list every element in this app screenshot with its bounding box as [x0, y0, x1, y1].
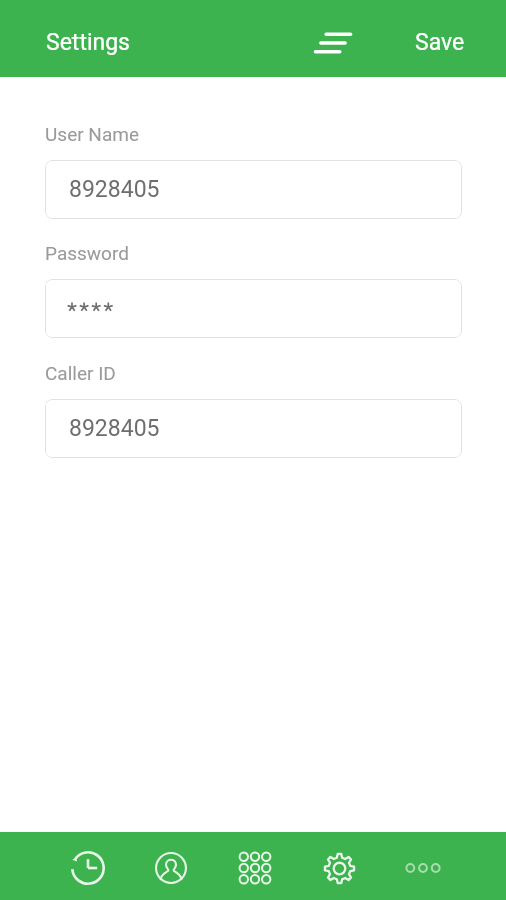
button[interactable]: Recents — [46, 832, 129, 900]
button[interactable]: Sort — [308, 18, 358, 68]
button[interactable]: Settings — [297, 832, 381, 900]
button[interactable] — [45, 279, 462, 338]
button[interactable]: 8928405 — [45, 160, 462, 219]
staticText: 8928405 — [69, 176, 160, 203]
button[interactable]: Save — [415, 29, 465, 56]
button[interactable]: Contacts — [129, 832, 213, 900]
button[interactable]: More — [381, 832, 465, 900]
button[interactable]: Dialpad — [213, 832, 297, 900]
staticText: 8928405 — [69, 415, 160, 442]
staticText: Password — [45, 242, 129, 264]
button[interactable]: Settings — [46, 29, 130, 56]
staticText: Caller ID — [45, 362, 116, 384]
button[interactable]: 8928405 — [45, 399, 462, 458]
staticText: User Name — [45, 123, 139, 145]
